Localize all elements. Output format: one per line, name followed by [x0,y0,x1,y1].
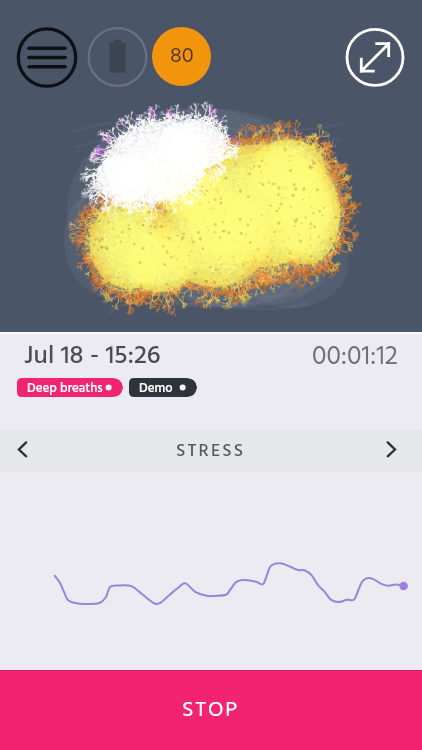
button[interactable]: Demo [129,378,198,397]
button[interactable]: Next metric [380,430,418,472]
staticText: Jul 18 - 15:26 [24,336,161,376]
button[interactable]: Expand [341,23,409,91]
button[interactable]: 80 [152,27,211,86]
staticText: Deep breaths [27,378,103,397]
button[interactable]: Deep breaths [17,378,124,397]
button[interactable]: Previous metric [4,430,42,472]
staticText: Demo [139,378,173,397]
button[interactable]: Menu [13,23,81,91]
staticText: 80 [170,39,194,74]
staticText: 00:01:12 [312,336,398,376]
button[interactable]: Battery level [84,23,152,91]
staticText: STRESS [176,437,246,466]
staticText: STOP [182,693,240,728]
button[interactable]: STOP [0,670,422,750]
